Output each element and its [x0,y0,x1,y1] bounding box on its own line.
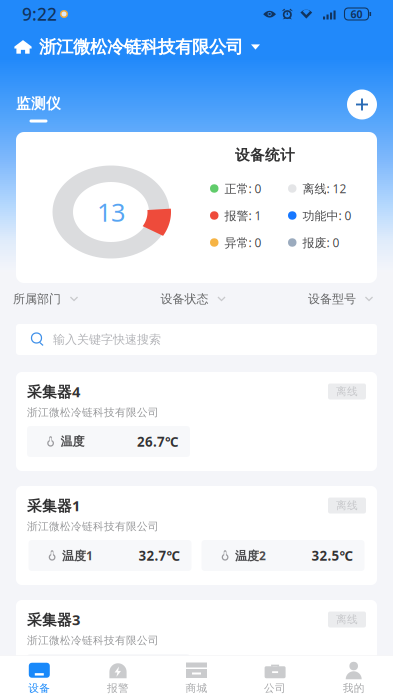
staticText: 32.5℃ [311,547,352,564]
staticText: 设备型号 [308,292,356,306]
staticText: 9:22 [22,2,57,25]
staticText: 13 [97,195,125,229]
staticText: 浙江微松冷链科技有限公司 [27,634,159,647]
staticText: 离线 [336,385,358,398]
staticText: 功能中: 0 [302,207,351,223]
staticText: 异常: 0 [224,234,261,250]
button[interactable]: 我的 [314,655,393,700]
button[interactable]: 设备状态 [163,283,229,315]
button[interactable]: 商城 [157,655,236,700]
button[interactable]: 设备型号 [311,283,377,315]
button[interactable]: 报警 [79,655,157,700]
staticText: 监测仪 [16,94,61,112]
staticText: 报警 [107,682,129,695]
staticText: 离线: 12 [302,180,346,196]
staticText: 温度1 [62,547,93,563]
staticText: 商城 [185,682,207,695]
staticText: 输入关键字快速搜索 [53,332,161,347]
staticText: 报警: 1 [224,207,261,223]
staticText: 温度 [60,434,84,449]
staticText: 浙江微松冷链科技有限公司 [27,406,159,419]
staticText: 采集器4 [27,382,80,401]
staticText: 温度2 [235,547,266,563]
staticText: 离线 [336,499,358,512]
button[interactable]: 公司 [236,655,314,700]
staticText: 浙江微松冷链科技有限公司 [27,520,159,533]
button[interactable]: 采集器1 [16,486,377,585]
button[interactable]: Add device [345,87,379,121]
button[interactable]: 采集器3 [16,600,377,699]
button[interactable]: 所属部门 [16,283,82,315]
staticText: 浙江微松冷链科技有限公司 [39,36,243,58]
staticText: 公司 [264,682,286,695]
button[interactable]: 采集器4 [16,372,377,471]
button[interactable]: 输入关键字快速搜索 [16,324,377,355]
button[interactable]: 设备 [0,655,79,700]
staticText: 采集器1 [27,496,80,515]
staticText: 设备 [28,682,50,695]
staticText: 采集器3 [27,610,80,629]
staticText: 设备统计 [235,146,295,164]
staticText: 离线 [336,613,358,626]
staticText: 报废: 0 [302,234,339,250]
staticText: 设备状态 [160,292,208,306]
staticText: 所属部门 [13,292,61,306]
staticText: 我的 [343,682,365,695]
staticText: 60 [350,7,362,21]
staticText: 正常: 0 [224,180,261,196]
staticText: 26.7℃ [137,433,178,450]
staticText: 32.7℃ [138,547,179,564]
